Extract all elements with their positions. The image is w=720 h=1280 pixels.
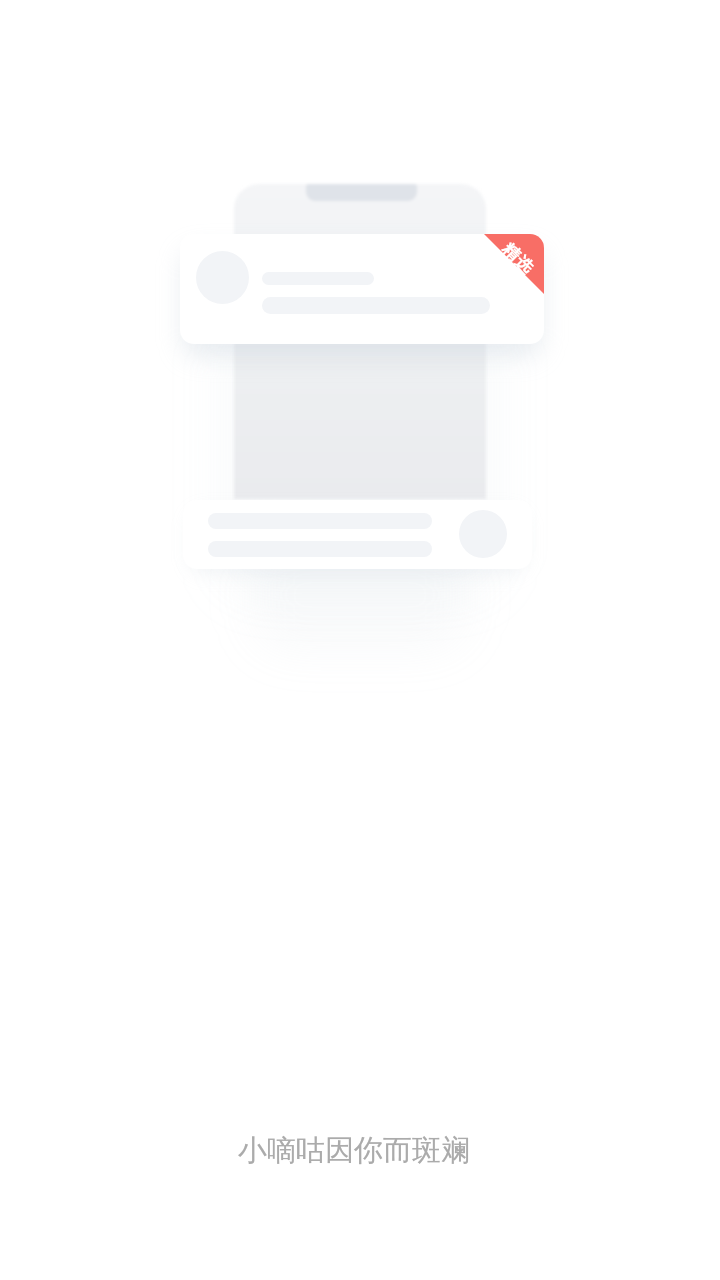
button[interactable]: Featured item card xyxy=(180,234,544,344)
staticText: 小嘀咕因你而斑斓 xyxy=(238,1132,470,1169)
staticText: 精选 xyxy=(497,239,538,279)
button[interactable]: List item card xyxy=(183,500,532,569)
